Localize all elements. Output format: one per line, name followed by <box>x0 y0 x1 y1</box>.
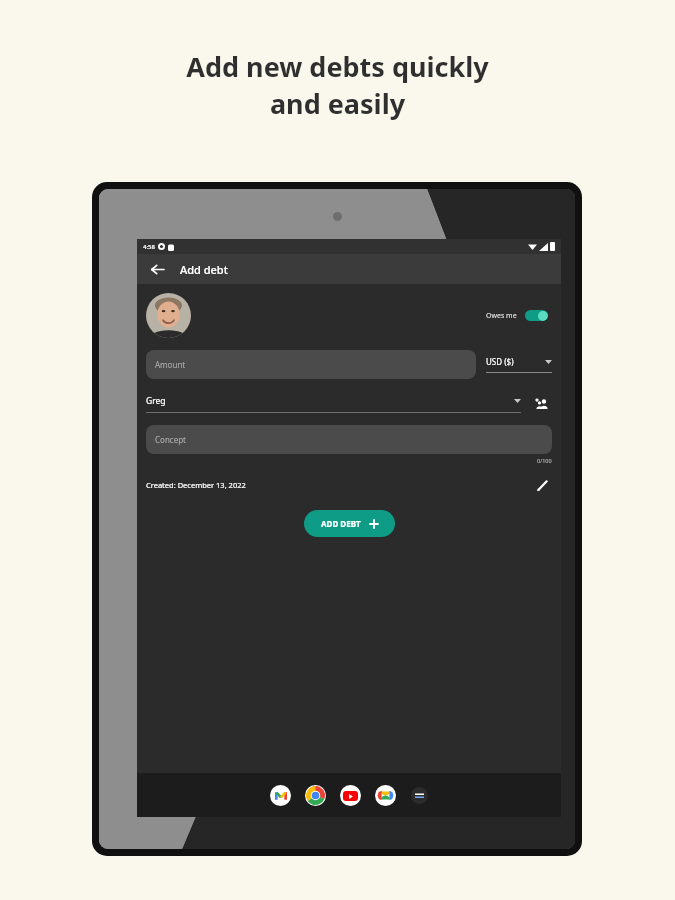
staticText: 4:58 <box>143 243 155 251</box>
staticText: Created: December 13, 2022 <box>146 480 246 490</box>
button[interactable]: Edit <box>532 475 552 495</box>
button[interactable]: All apps <box>411 787 428 804</box>
staticText: USD ($) <box>486 356 514 367</box>
button[interactable]: Greg <box>146 395 521 413</box>
button[interactable]: Back <box>146 258 168 280</box>
button[interactable]: Add contact <box>532 394 552 414</box>
button[interactable]: Amount <box>146 350 476 379</box>
staticText: Concept <box>155 434 186 445</box>
button[interactable]: Contact photo <box>146 293 191 338</box>
button[interactable]: Photos <box>375 785 396 806</box>
button[interactable]: Chrome <box>305 785 326 806</box>
staticText: Greg <box>146 395 166 407</box>
staticText: 0/100 <box>537 457 552 464</box>
staticText: Amount <box>155 359 186 370</box>
staticText: Owes me <box>486 311 517 321</box>
button[interactable]: YouTube <box>340 785 361 806</box>
button[interactable]: Gmail <box>270 785 291 806</box>
button[interactable]: Concept <box>146 425 552 454</box>
staticText: Add debt <box>180 262 228 277</box>
button[interactable]: ADD DEBT <box>304 510 395 537</box>
staticText: ADD DEBT <box>321 518 361 529</box>
button[interactable]: Owes me <box>482 306 552 325</box>
staticText: Add new debts quickly and easily <box>186 48 489 122</box>
button[interactable]: USD ($) <box>486 356 552 373</box>
